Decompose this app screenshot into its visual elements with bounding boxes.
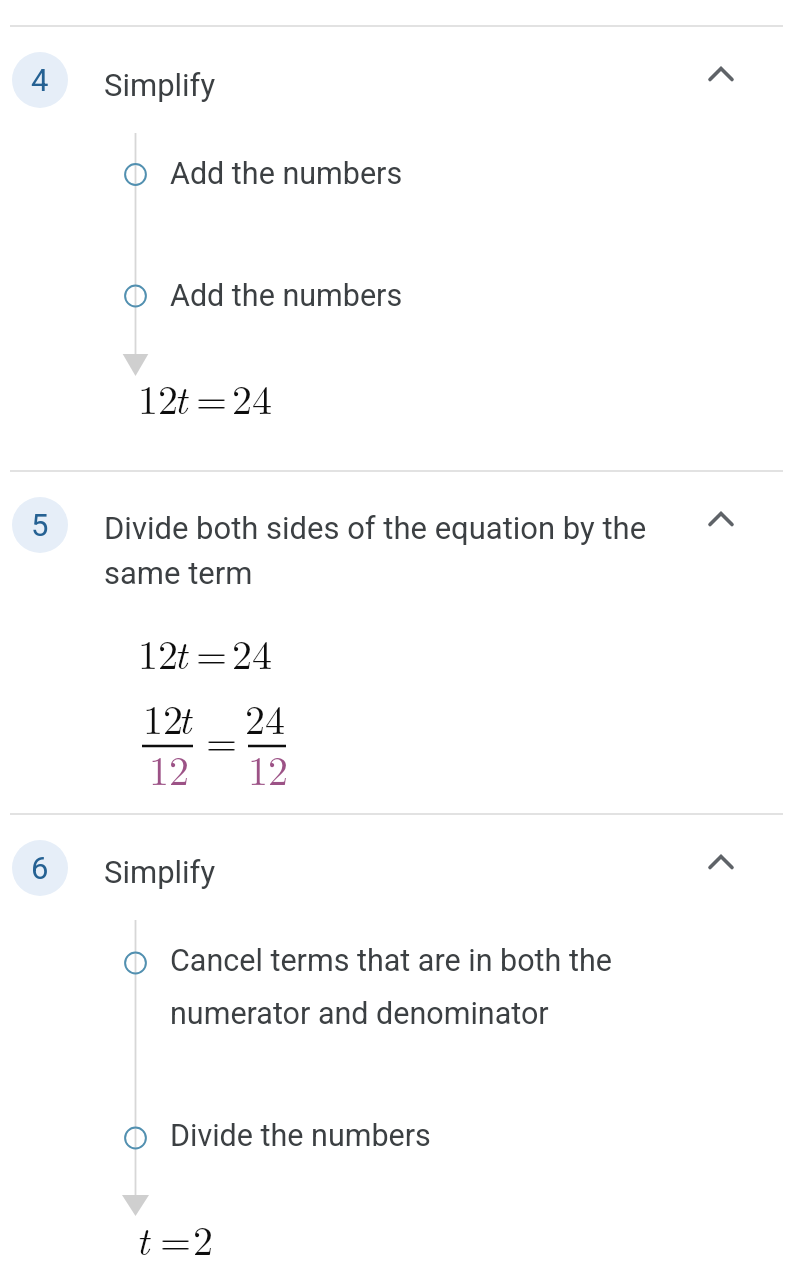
staticText: Simplify xyxy=(104,854,649,890)
staticText: = xyxy=(196,624,228,681)
staticText: 5 xyxy=(31,507,49,543)
staticText: t xyxy=(136,1210,150,1267)
staticText: 12 xyxy=(138,624,178,681)
staticText: t xyxy=(178,689,192,746)
staticText: Cancel terms that are in both the numera… xyxy=(170,943,622,1032)
staticText: 2 xyxy=(193,1210,213,1267)
staticText: Divide the numbers xyxy=(170,1118,622,1154)
staticText: 12 xyxy=(248,740,288,797)
button[interactable]: 6 xyxy=(0,828,693,908)
staticText: 12 xyxy=(138,369,178,426)
staticText: t xyxy=(174,369,188,426)
staticText: Divide both sides of the equation by the… xyxy=(104,510,664,591)
staticText: 12 xyxy=(143,689,183,746)
staticText: = xyxy=(160,1210,192,1267)
staticText: Add the numbers xyxy=(170,156,600,192)
staticText: 24 xyxy=(232,624,272,681)
button[interactable]: Collapse step xyxy=(693,834,749,890)
staticText: t xyxy=(174,624,188,681)
button[interactable]: Cancel terms that are in both the numera… xyxy=(108,929,648,1041)
button[interactable]: Collapse step xyxy=(693,491,749,547)
button[interactable]: 5 xyxy=(0,485,693,605)
button[interactable]: Divide the numbers xyxy=(108,1104,648,1164)
button[interactable]: 4 xyxy=(0,40,693,120)
button[interactable]: Add the numbers xyxy=(108,142,648,202)
staticText: 4 xyxy=(31,62,49,98)
staticText: 24 xyxy=(232,369,272,426)
staticText: Add the numbers xyxy=(170,278,600,314)
staticText: 6 xyxy=(31,850,49,886)
button[interactable]: Collapse step xyxy=(693,46,749,102)
staticText: 12 xyxy=(149,740,189,797)
staticText: = xyxy=(196,369,228,426)
staticText: Simplify xyxy=(104,67,649,103)
button[interactable]: Add the numbers xyxy=(108,264,648,324)
staticText: 24 xyxy=(245,689,285,746)
staticText: = xyxy=(206,711,238,768)
